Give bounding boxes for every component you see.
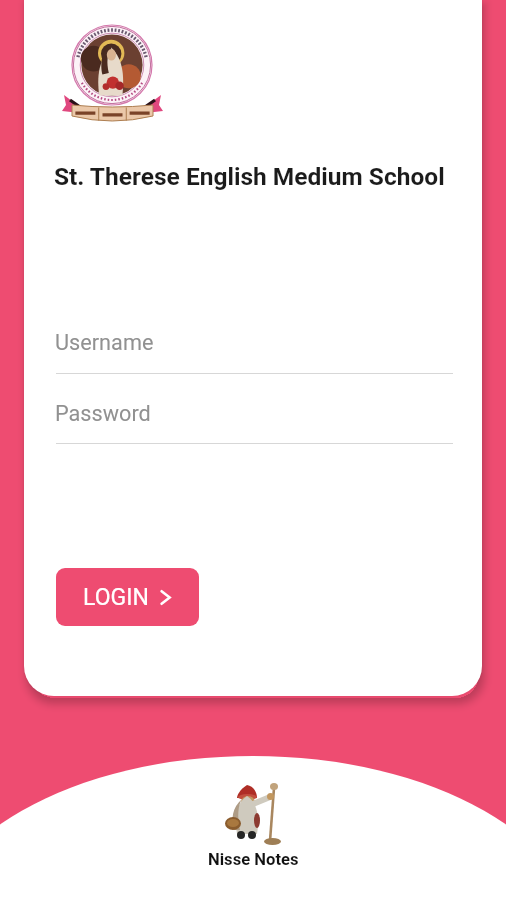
button[interactable]: LOGIN bbox=[56, 568, 199, 626]
staticText: Username bbox=[55, 330, 154, 355]
other: Nisse Notes gnome mascot bbox=[225, 783, 282, 847]
staticText: Nisse Notes bbox=[208, 850, 299, 869]
staticText: Password bbox=[55, 401, 151, 426]
other: St. Therese English Medium School logo bbox=[40, 21, 170, 125]
staticText: St. Therese English Medium School bbox=[54, 162, 445, 191]
button[interactable]: Password bbox=[56, 393, 453, 444]
staticText: LOGIN bbox=[83, 584, 149, 611]
button[interactable]: Username bbox=[56, 322, 453, 374]
